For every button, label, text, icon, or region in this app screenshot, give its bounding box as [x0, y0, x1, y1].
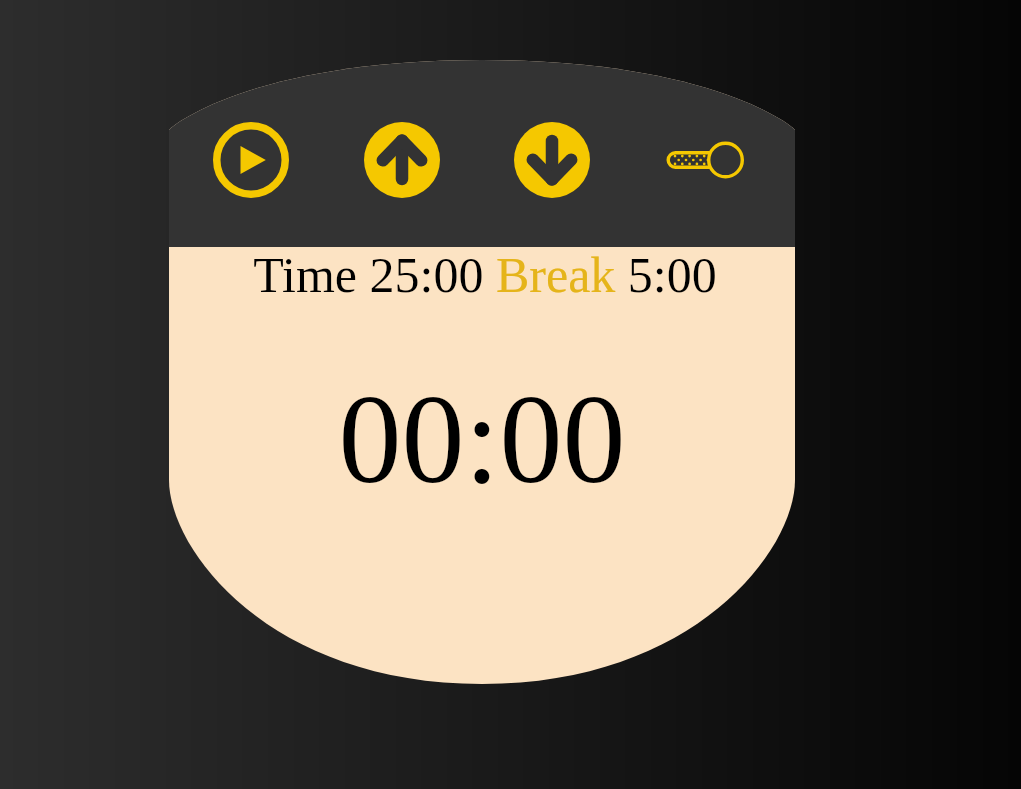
button[interactable]: Decrease duration: [514, 122, 590, 198]
staticText: Time 25:00 Break 5:00: [253, 247, 717, 302]
button[interactable]: Toggle vibration: [667, 122, 743, 198]
button[interactable]: Play: [213, 122, 289, 198]
button[interactable]: Increase duration: [364, 122, 440, 198]
staticText: 00:00: [338, 370, 626, 510]
